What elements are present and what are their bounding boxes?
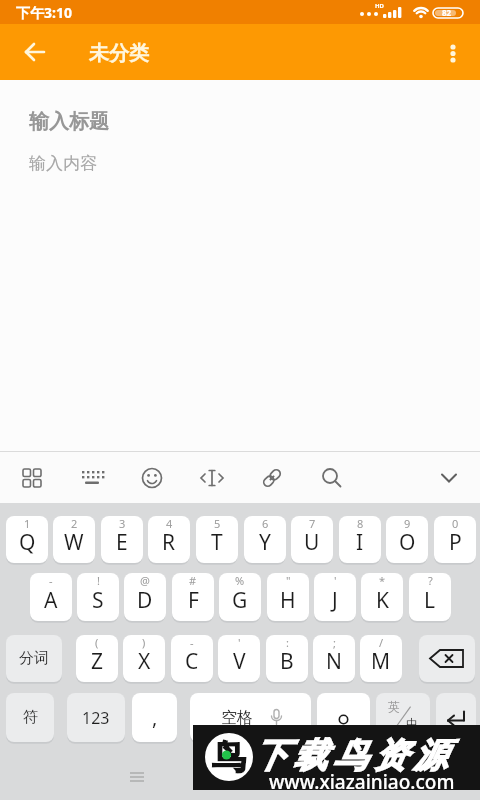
button[interactable] (190, 455, 234, 499)
button[interactable]: 符 (6, 693, 54, 742)
button[interactable]: % (219, 573, 261, 621)
button[interactable]: ( (76, 635, 118, 682)
staticText: www.xiazainiao.com (269, 769, 455, 795)
button[interactable]: 输入内容 (0, 148, 480, 184)
button[interactable] (130, 455, 174, 499)
button[interactable]: 4 (148, 516, 190, 563)
staticText: Q (19, 528, 36, 557)
staticText: F (188, 586, 199, 615)
button[interactable]: , (132, 693, 177, 742)
staticText: 鸟 (212, 736, 246, 779)
button[interactable]: ' (314, 573, 356, 621)
staticText: ; (333, 635, 336, 650)
staticText: 1 (24, 516, 31, 531)
staticText: R (162, 528, 176, 557)
staticText: M (371, 647, 391, 676)
staticText: 4 (166, 516, 173, 531)
staticText: P (449, 528, 462, 557)
staticText: 英 (388, 699, 400, 714)
button[interactable]: 5 (196, 516, 238, 563)
staticText: / (379, 635, 384, 650)
button[interactable]: 2 (53, 516, 95, 563)
button[interactable]: 空格 (190, 693, 311, 742)
button[interactable]: ? (409, 573, 451, 621)
staticText: T (211, 528, 223, 557)
staticText: 9 (404, 516, 411, 531)
staticText: * (379, 573, 386, 588)
staticText: @ (140, 573, 150, 588)
button[interactable]: ; (313, 635, 355, 682)
staticText: - (49, 573, 53, 588)
button[interactable]: 0 (434, 516, 476, 563)
button[interactable]: / (360, 635, 402, 682)
staticText: 下载鸟资源 (250, 734, 450, 777)
staticText: HD (375, 2, 384, 10)
button[interactable]: @ (124, 573, 166, 621)
staticText: W (64, 528, 84, 557)
staticText: , (152, 704, 158, 731)
button[interactable]: - (30, 573, 72, 621)
button[interactable]: 9 (386, 516, 428, 563)
button[interactable] (436, 693, 476, 742)
staticText: O (399, 528, 416, 557)
staticText: 输入内容 (29, 153, 97, 174)
staticText: N (326, 647, 342, 676)
button[interactable]: ' (218, 635, 260, 682)
button[interactable] (13, 30, 57, 74)
button[interactable]: ! (77, 573, 119, 621)
staticText: % (235, 573, 245, 588)
staticText: X (138, 647, 151, 676)
staticText: C (185, 647, 199, 676)
button[interactable] (431, 30, 475, 74)
staticText: 0 (452, 516, 459, 531)
button[interactable] (250, 455, 294, 499)
button[interactable]: : (266, 635, 308, 682)
staticText: A (44, 586, 58, 615)
button[interactable]: - (171, 635, 213, 682)
button[interactable]: 8 (339, 516, 381, 563)
button[interactable] (310, 455, 354, 499)
button[interactable]: " (267, 573, 309, 621)
staticText: ? (428, 573, 433, 588)
staticText: D (137, 586, 153, 615)
button[interactable] (427, 455, 471, 499)
button[interactable]: 输入标题 (0, 104, 480, 144)
staticText: 7 (309, 516, 316, 531)
button[interactable]: # (172, 573, 214, 621)
staticText: 3 (119, 516, 126, 531)
staticText: Y (259, 528, 271, 557)
button[interactable]: * (361, 573, 403, 621)
staticText: 5 (214, 516, 221, 531)
staticText: S (92, 586, 104, 615)
staticText: 下午3:10 (16, 3, 72, 22)
staticText: K (376, 586, 389, 615)
staticText: ' (238, 635, 241, 650)
button[interactable] (10, 455, 54, 499)
button[interactable]: 分词 (6, 635, 62, 682)
button[interactable]: 123 (67, 693, 125, 742)
button[interactable] (419, 635, 475, 682)
staticText: L (424, 586, 436, 615)
button[interactable] (317, 693, 370, 742)
staticText: 符 (23, 708, 38, 727)
staticText: - (190, 635, 194, 650)
button[interactable]: 英 (376, 693, 430, 742)
button[interactable]: ) (123, 635, 165, 682)
staticText: " (286, 573, 291, 588)
button[interactable]: 6 (244, 516, 286, 563)
staticText: 8 (357, 516, 364, 531)
staticText: G (232, 586, 248, 615)
staticText: ! (97, 573, 100, 588)
button[interactable]: 7 (291, 516, 333, 563)
staticText: B (280, 647, 294, 676)
button[interactable] (70, 455, 114, 499)
button[interactable]: 1 (6, 516, 48, 563)
staticText: 分词 (19, 649, 49, 668)
staticText: I (356, 528, 364, 557)
staticText: 空格 (221, 708, 253, 728)
staticText: U (304, 528, 320, 557)
staticText: ) (142, 635, 146, 650)
staticText: # (189, 573, 197, 588)
button[interactable]: 鸟 (193, 725, 480, 790)
button[interactable]: 3 (101, 516, 143, 563)
